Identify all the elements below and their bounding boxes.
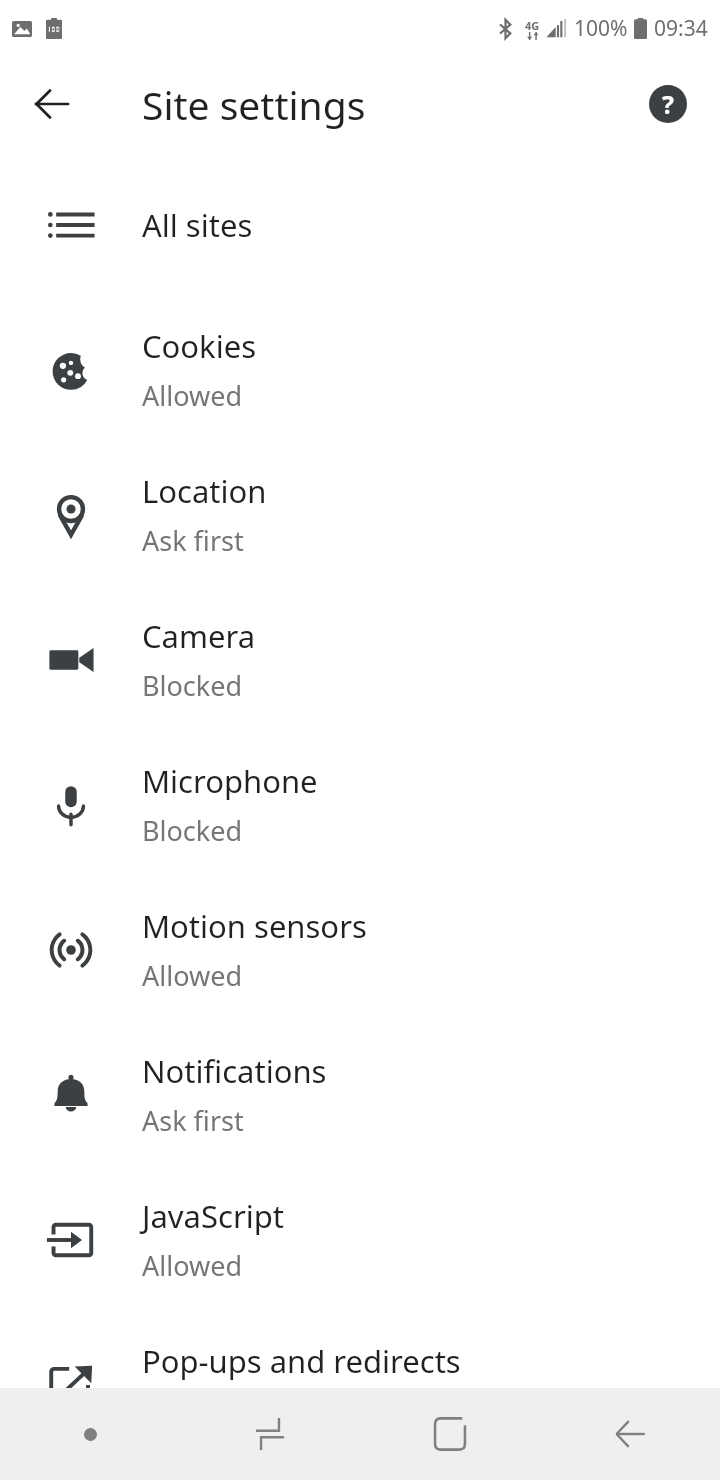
- staticText: 09:34: [654, 14, 708, 43]
- button[interactable]: Home: [360, 1388, 540, 1480]
- button[interactable]: All sites: [0, 152, 720, 297]
- staticText: 4G: [525, 18, 540, 33]
- staticText: Allowed: [142, 1247, 243, 1284]
- staticText: Motion sensors: [142, 905, 367, 947]
- button[interactable]: Back: [540, 1388, 720, 1480]
- staticText: Pop-ups and redirects: [142, 1340, 461, 1382]
- button[interactable]: Help and feedback: [638, 74, 698, 134]
- staticText: Allowed: [142, 957, 243, 994]
- staticText: Ask first: [142, 522, 244, 559]
- button[interactable]: Pop-ups and redirects: [0, 1312, 720, 1457]
- button[interactable]: Cookies: [0, 297, 720, 442]
- staticText: Location: [142, 470, 267, 512]
- button[interactable]: Navigate up: [20, 72, 84, 136]
- staticText: Blocked: [142, 667, 243, 704]
- button[interactable]: Menu: [0, 1388, 180, 1480]
- staticText: Microphone: [142, 760, 318, 802]
- staticText: Notifications: [142, 1050, 327, 1092]
- staticText: Blocked: [142, 812, 243, 849]
- staticText: Ask first: [142, 1102, 244, 1139]
- staticText: ?: [662, 87, 674, 121]
- staticText: Cookies: [142, 325, 256, 367]
- button[interactable]: JavaScript: [0, 1167, 720, 1312]
- button[interactable]: Microphone: [0, 732, 720, 877]
- staticText: Camera: [142, 615, 256, 657]
- staticText: Site settings: [142, 78, 366, 131]
- button[interactable]: Recent apps: [180, 1388, 360, 1480]
- button[interactable]: Camera: [0, 587, 720, 732]
- button[interactable]: Location: [0, 442, 720, 587]
- staticText: Allowed: [142, 377, 243, 414]
- button[interactable]: Motion sensors: [0, 877, 720, 1022]
- button[interactable]: Notifications: [0, 1022, 720, 1167]
- staticText: JavaScript: [142, 1195, 284, 1237]
- staticText: All sites: [142, 204, 253, 246]
- staticText: 100%: [574, 14, 628, 43]
